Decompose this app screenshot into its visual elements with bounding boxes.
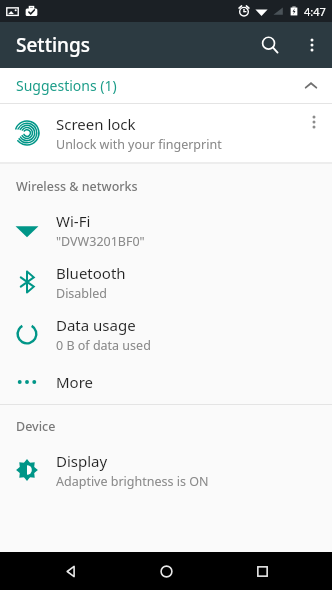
staticText: Device <box>16 418 56 435</box>
button[interactable]: Back <box>44 552 96 590</box>
staticText: Settings <box>16 32 90 58</box>
button[interactable]: Bluetooth <box>0 256 332 308</box>
staticText: 4:47 <box>304 4 326 19</box>
staticText: Wireless & networks <box>16 178 138 195</box>
staticText: Data usage <box>56 315 136 335</box>
staticText: Screen lock <box>56 114 136 134</box>
button[interactable]: Wi-Fi <box>0 204 332 256</box>
staticText: Suggestions (1) <box>16 76 297 95</box>
staticText: "DVW3201BF0" <box>56 233 145 250</box>
staticText: Unlock with your fingerprint <box>56 136 222 153</box>
button[interactable]: Screen lock <box>0 104 332 162</box>
button[interactable]: Suggestions (1) <box>0 68 332 103</box>
staticText: Display <box>56 451 108 471</box>
button[interactable]: More <box>0 360 332 404</box>
staticText: 0 B of data used <box>56 337 151 354</box>
staticText: More <box>56 372 94 392</box>
staticText: Bluetooth <box>56 263 126 283</box>
staticText: Adaptive brightness is ON <box>56 473 209 490</box>
button[interactable]: More options <box>292 25 332 65</box>
button[interactable]: Data usage <box>0 308 332 360</box>
staticText: Wi-Fi <box>56 211 91 231</box>
button[interactable]: Home <box>140 552 192 590</box>
button[interactable]: Display <box>0 444 332 496</box>
button[interactable]: Recent apps <box>236 552 288 590</box>
button[interactable]: Search <box>248 23 292 67</box>
staticText: Disabled <box>56 285 108 302</box>
button[interactable]: Suggestion options <box>296 104 332 140</box>
